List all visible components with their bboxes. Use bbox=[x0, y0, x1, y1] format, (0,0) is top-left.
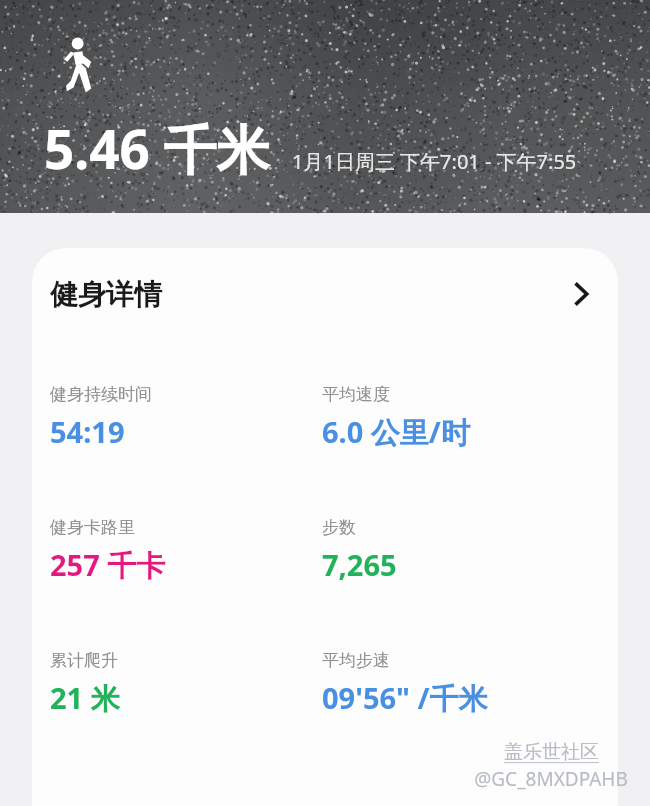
staticText: 步数 bbox=[322, 517, 356, 538]
staticText: 健身详情 bbox=[50, 277, 162, 312]
staticText: 平均速度 bbox=[322, 384, 390, 405]
staticText: 54:19 bbox=[50, 412, 125, 451]
staticText: 21 米 bbox=[50, 678, 120, 718]
other: Open workout details bbox=[568, 281, 594, 307]
staticText: 6.0 公里/时 bbox=[322, 412, 470, 452]
staticText: 09'56" /千米 bbox=[322, 678, 488, 718]
staticText: 257 千卡 bbox=[50, 545, 166, 585]
staticText: 7,265 bbox=[322, 545, 397, 584]
staticText: 累计爬升 bbox=[50, 650, 118, 671]
staticText: 平均步速 bbox=[322, 650, 390, 671]
staticText: 健身卡路里 bbox=[50, 517, 135, 538]
staticText: 1月1日周三 下午7:01 - 下午7:55 bbox=[292, 148, 577, 175]
staticText: @GC_8MXDPAHB bbox=[474, 766, 628, 792]
button[interactable]: 健身详情 bbox=[32, 248, 618, 340]
staticText: 5.46 千米 bbox=[44, 112, 270, 184]
staticText: 盖乐世社区 bbox=[504, 740, 599, 764]
other: Walking workout bbox=[62, 37, 96, 93]
staticText: 健身持续时间 bbox=[50, 384, 152, 405]
